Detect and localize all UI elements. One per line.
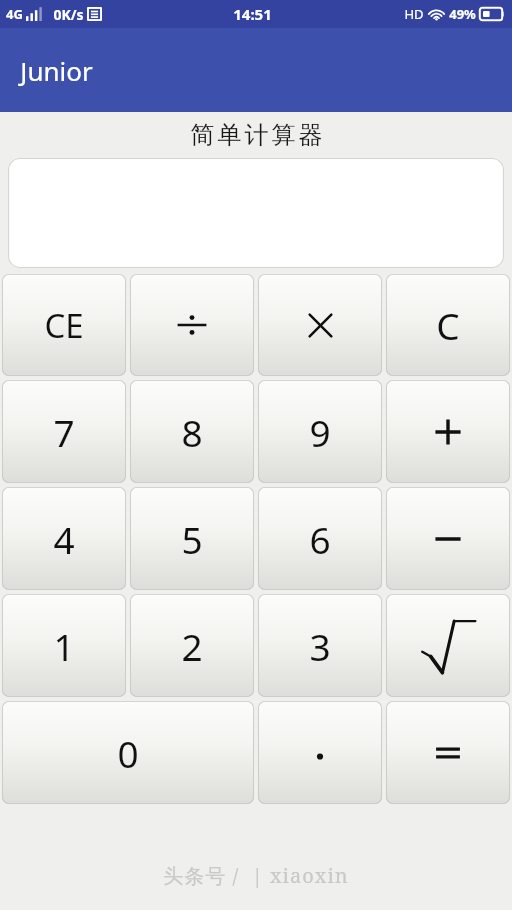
staticText: 6 xyxy=(309,514,331,564)
staticText: 8 xyxy=(181,407,203,457)
staticText: 4G xyxy=(6,5,23,23)
staticText: 9 xyxy=(309,407,331,457)
button[interactable]: 0 xyxy=(2,701,254,804)
staticText: 49% xyxy=(449,5,476,23)
staticText: 头条号 / | xiaoxin xyxy=(163,862,349,889)
button[interactable]: 7 xyxy=(2,380,126,483)
button[interactable]: 5 xyxy=(130,487,254,590)
button[interactable]: 8 xyxy=(130,380,254,483)
staticText: 5 xyxy=(181,514,203,564)
button[interactable]: C xyxy=(386,274,510,376)
staticText: C xyxy=(436,300,460,350)
staticText: Junior xyxy=(20,53,93,88)
button[interactable]: ÷ xyxy=(130,274,254,376)
button[interactable]: 9 xyxy=(258,380,382,483)
staticText: HD xyxy=(404,5,424,23)
button[interactable]: × xyxy=(258,274,382,376)
button[interactable]: √ xyxy=(386,594,510,697)
button[interactable]: CE xyxy=(2,274,126,376)
button[interactable]: 1 xyxy=(2,594,126,697)
staticText: 0 xyxy=(117,728,139,778)
button[interactable]: − xyxy=(386,487,510,590)
staticText: 7 xyxy=(53,407,75,457)
button[interactable]: 2 xyxy=(130,594,254,697)
button[interactable]: 3 xyxy=(258,594,382,697)
staticText: 2 xyxy=(181,621,203,671)
button[interactable]: . xyxy=(258,701,382,804)
staticText: 0K/s xyxy=(53,5,84,24)
staticText: 4 xyxy=(53,514,75,564)
button[interactable]: Display xyxy=(8,158,504,268)
button[interactable]: = xyxy=(386,701,510,804)
staticText: 1 xyxy=(53,621,75,671)
staticText: CE xyxy=(44,303,84,348)
button[interactable]: + xyxy=(386,380,510,483)
button[interactable]: 6 xyxy=(258,487,382,590)
staticText: 3 xyxy=(309,621,331,671)
button[interactable]: 4 xyxy=(2,487,126,590)
staticText: 简单计算器 xyxy=(189,120,324,150)
staticText: 14:51 xyxy=(233,4,272,24)
